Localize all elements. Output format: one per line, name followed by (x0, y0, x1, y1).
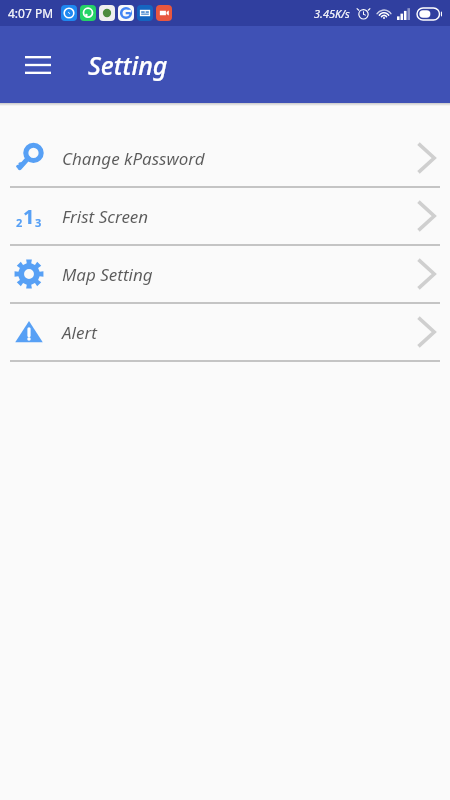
staticText: Alert (62, 321, 97, 344)
staticText: Frist Screen (62, 205, 149, 228)
staticText: 3.45K/s (314, 6, 350, 21)
staticText: 3 (35, 215, 42, 230)
staticText: 4:07 PM (8, 5, 54, 21)
staticText: Map Setting (62, 263, 153, 286)
button[interactable]: Open navigation menu (12, 39, 64, 91)
button[interactable]: Map Setting (0, 246, 450, 302)
button[interactable]: 2 (0, 188, 450, 244)
staticText: Setting (88, 48, 168, 82)
staticText: Change kPassword (62, 147, 205, 170)
button[interactable]: Change kPassword (0, 130, 450, 186)
staticText: 1 (23, 203, 35, 230)
button[interactable]: Alert (0, 304, 450, 360)
staticText: 2 (16, 215, 23, 230)
